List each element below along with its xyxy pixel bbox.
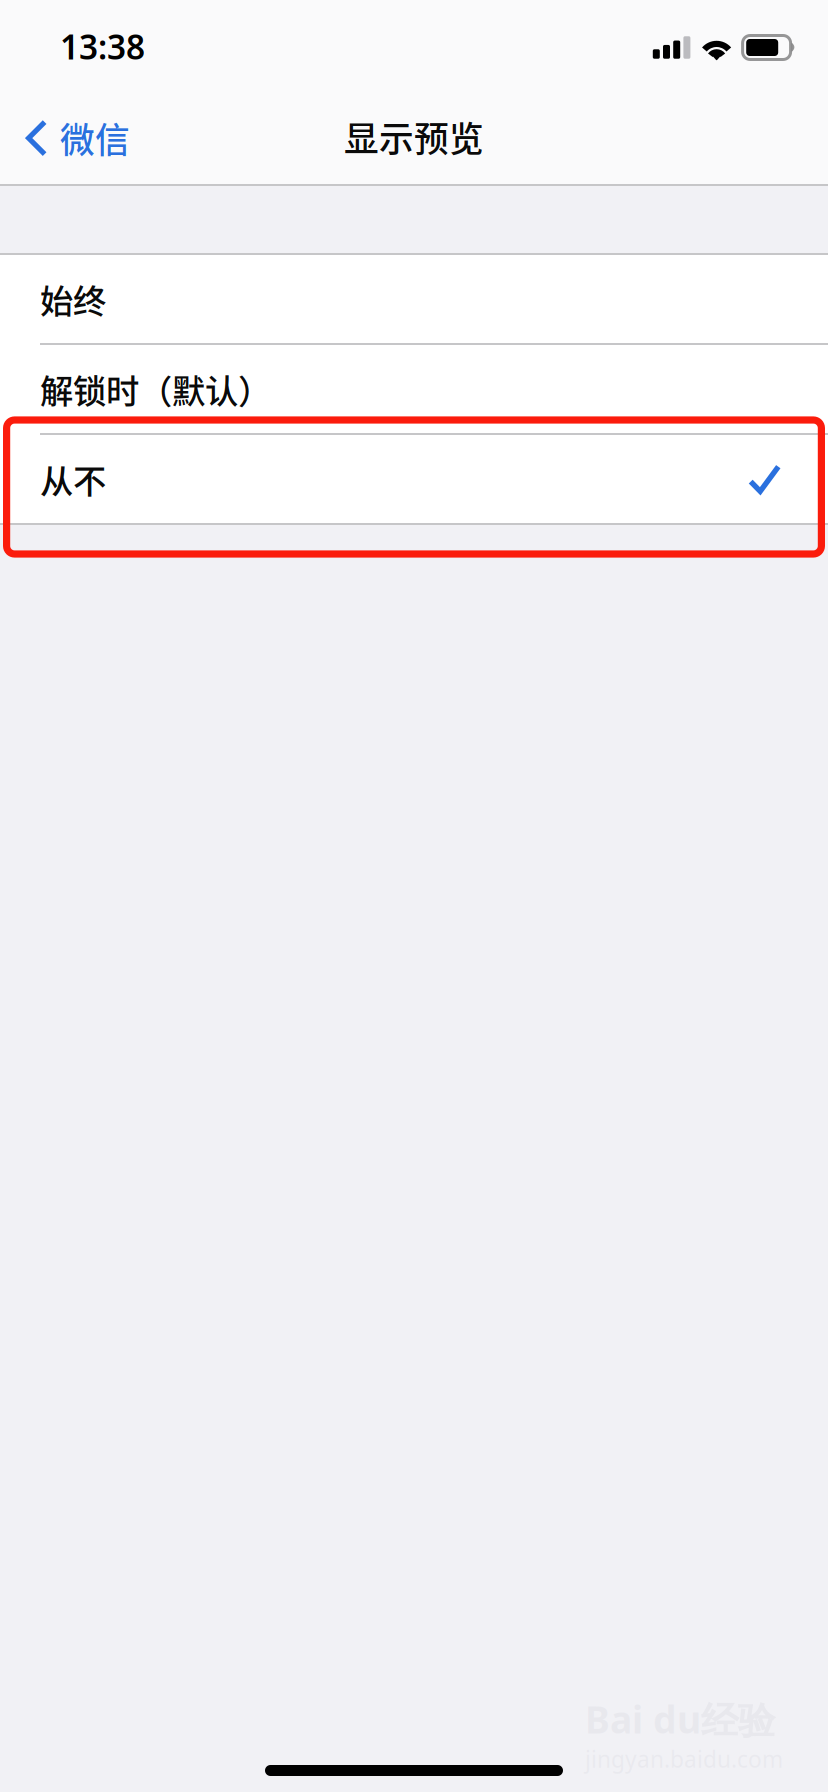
staticText: 微信 [60, 113, 130, 163]
staticText: 始终 [40, 275, 106, 323]
staticText: 显示预览 [344, 112, 484, 162]
staticText: 13:38 [60, 24, 145, 69]
button[interactable]: 从不 [0, 433, 828, 523]
staticText: Bai du经验 [585, 1694, 775, 1744]
button[interactable]: 微信 [0, 93, 146, 183]
button[interactable]: 解锁时（默认） [0, 343, 828, 433]
staticText: 解锁时（默认） [40, 365, 271, 413]
staticText: 从不 [40, 455, 106, 503]
button[interactable]: 始终 [0, 255, 828, 343]
